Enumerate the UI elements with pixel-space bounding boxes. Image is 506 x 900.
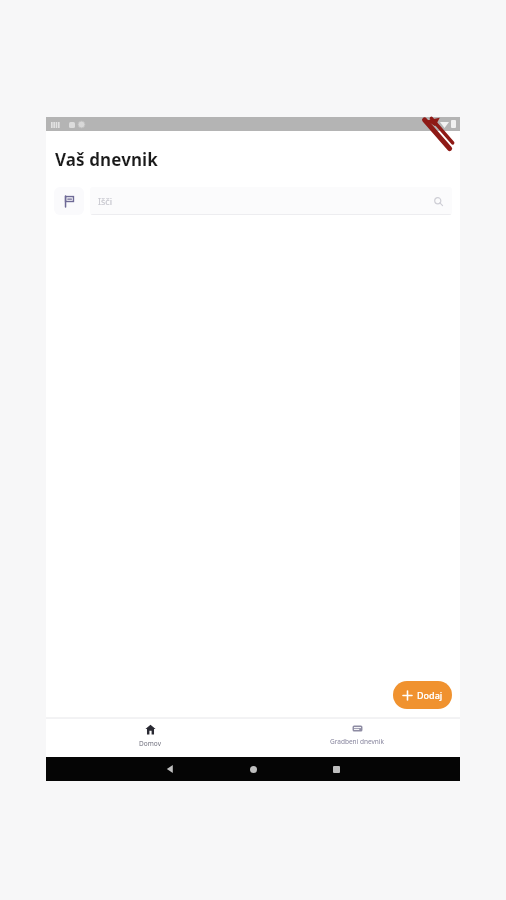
staticText: Vaš dnevnik — [55, 148, 158, 171]
button[interactable]: Išči — [90, 187, 452, 215]
button[interactable]: Filter — [54, 187, 84, 215]
staticText: Gradbeni dnevnik — [330, 737, 384, 746]
staticText: Išči — [98, 195, 113, 207]
staticText: Domov — [139, 739, 161, 748]
button[interactable]: Domov — [95, 719, 205, 757]
staticText: Dodaj — [417, 689, 443, 701]
button[interactable]: Gradbeni dnevnik — [302, 719, 412, 757]
button[interactable]: Recent apps — [324, 757, 348, 781]
button[interactable]: Dodaj — [393, 681, 452, 709]
button[interactable]: Back — [158, 757, 182, 781]
button[interactable]: Home — [241, 757, 265, 781]
